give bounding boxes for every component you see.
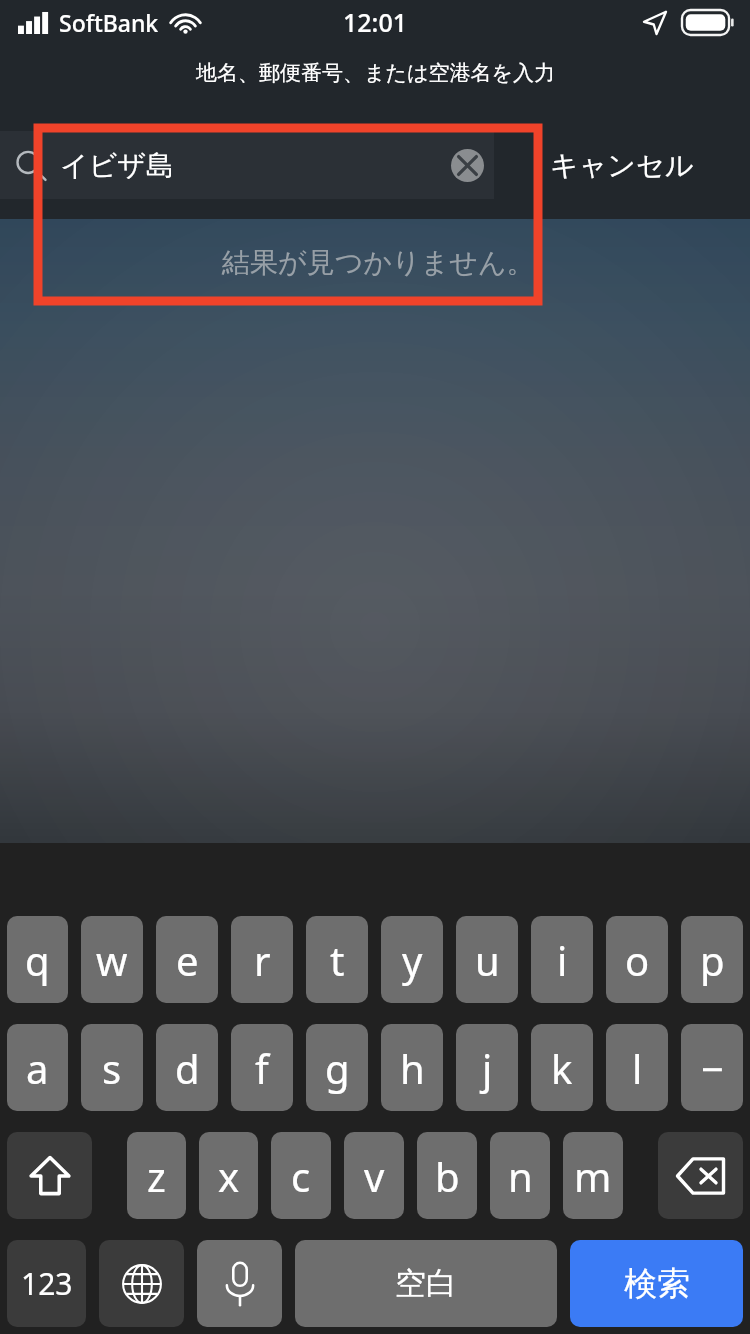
staticText: − xyxy=(701,1041,724,1095)
staticText: 空白 xyxy=(395,1264,457,1303)
button[interactable]: 空白 xyxy=(295,1240,557,1327)
button[interactable]: m xyxy=(563,1132,623,1219)
staticText: r xyxy=(254,933,271,987)
button[interactable]: h xyxy=(381,1024,443,1111)
staticText: v xyxy=(364,1149,385,1203)
button[interactable]: 検索 xyxy=(570,1240,743,1327)
button[interactable]: t xyxy=(306,916,368,1003)
staticText: d xyxy=(175,1041,200,1095)
button[interactable]: j xyxy=(456,1024,518,1111)
button[interactable]: d xyxy=(156,1024,218,1111)
staticText: n xyxy=(508,1149,533,1203)
button[interactable]: Backspace xyxy=(658,1132,743,1219)
button[interactable]: x xyxy=(199,1132,258,1219)
button[interactable]: c xyxy=(271,1132,331,1219)
staticText: y xyxy=(402,933,423,987)
staticText: 地名、郵便番号、または空港名を入力 xyxy=(196,60,555,86)
button[interactable]: p xyxy=(681,916,743,1003)
staticText: p xyxy=(700,933,725,987)
button[interactable]: n xyxy=(490,1132,550,1219)
button[interactable]: f xyxy=(231,1024,293,1111)
button[interactable]: イビザ島 xyxy=(0,131,494,199)
staticText: u xyxy=(475,933,500,987)
button[interactable]: r xyxy=(231,916,293,1003)
button[interactable]: o xyxy=(606,916,668,1003)
staticText: a xyxy=(26,1041,49,1095)
staticText: 123 xyxy=(21,1263,73,1304)
button[interactable]: b xyxy=(417,1132,477,1219)
button[interactable]: 123 xyxy=(7,1240,86,1327)
staticText: t xyxy=(330,933,345,987)
staticText: f xyxy=(255,1041,269,1095)
button[interactable]: q xyxy=(7,916,68,1003)
button[interactable]: l xyxy=(606,1024,668,1111)
staticText: 12:01 xyxy=(343,5,408,39)
button[interactable]: Shift xyxy=(7,1132,92,1219)
staticText: k xyxy=(551,1041,573,1095)
button[interactable]: y xyxy=(381,916,443,1003)
staticText: w xyxy=(96,933,128,987)
button[interactable]: z xyxy=(127,1132,186,1219)
staticText: x xyxy=(218,1149,240,1203)
button[interactable]: g xyxy=(306,1024,368,1111)
button[interactable]: e xyxy=(156,916,218,1003)
staticText: z xyxy=(147,1149,166,1203)
button[interactable]: s xyxy=(81,1024,143,1111)
staticText: i xyxy=(557,933,568,987)
button[interactable]: a xyxy=(7,1024,68,1111)
button[interactable]: v xyxy=(344,1132,404,1219)
staticText: q xyxy=(25,933,50,987)
staticText: b xyxy=(435,1149,460,1203)
staticText: 検索 xyxy=(624,1263,690,1305)
staticText: o xyxy=(625,933,650,987)
staticText: c xyxy=(291,1149,311,1203)
staticText: 結果が見つかりません。 xyxy=(222,245,535,280)
button[interactable]: i xyxy=(531,916,593,1003)
staticText: j xyxy=(482,1041,493,1095)
staticText: e xyxy=(176,933,199,987)
button[interactable]: 言語を切り替える xyxy=(99,1240,184,1327)
button[interactable]: − xyxy=(681,1024,743,1111)
staticText: m xyxy=(574,1149,612,1203)
staticText: h xyxy=(400,1041,425,1095)
button[interactable]: 音声入力 xyxy=(197,1240,282,1327)
button[interactable]: k xyxy=(531,1024,593,1111)
button[interactable]: u xyxy=(456,916,518,1003)
staticText: イビザ島 xyxy=(60,148,444,183)
staticText: g xyxy=(325,1041,350,1095)
button[interactable]: w xyxy=(81,916,143,1003)
button[interactable]: 消去 xyxy=(444,142,490,188)
staticText: SoftBank xyxy=(59,7,159,38)
button[interactable]: キャンセル xyxy=(494,131,750,199)
staticText: キャンセル xyxy=(550,148,694,183)
staticText: s xyxy=(102,1041,122,1095)
staticText: l xyxy=(632,1041,643,1095)
